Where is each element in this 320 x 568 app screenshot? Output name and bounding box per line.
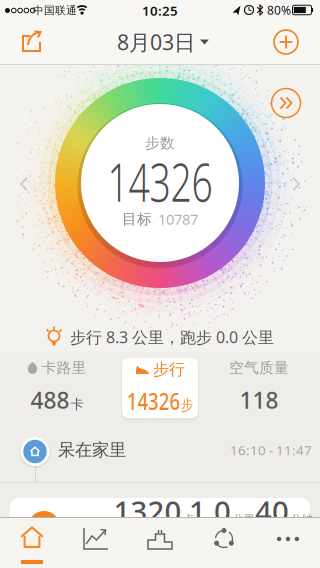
button[interactable]: 8月03日: [117, 28, 209, 56]
staticText: 呆在家里: [58, 439, 126, 461]
button[interactable]: 步行: [119, 357, 200, 419]
staticText: 分钟: [291, 512, 313, 525]
staticText: 16:10 - 11:47: [230, 441, 312, 459]
staticText: 14326: [119, 386, 184, 416]
button[interactable]: 呆在家里: [0, 420, 320, 480]
staticText: 步行 8.3 公里，跑步 0.0 公里: [70, 326, 274, 348]
staticText: 步: [185, 396, 200, 414]
staticText: 卡路里: [41, 359, 86, 377]
button[interactable]: [271, 27, 301, 57]
button[interactable]: [83, 527, 109, 551]
button[interactable]: [211, 527, 237, 551]
staticText: 公里: [233, 512, 255, 525]
button[interactable]: 1320: [10, 498, 310, 568]
staticText: 卡: [183, 512, 194, 525]
staticText: 118: [239, 385, 278, 415]
staticText: 10787: [158, 209, 198, 229]
staticText: 中国联通: [33, 4, 77, 17]
button[interactable]: [12, 169, 36, 199]
staticText: 80%: [267, 2, 291, 18]
staticText: 40: [255, 491, 289, 530]
staticText: 14326: [85, 146, 235, 216]
staticText: 1320: [113, 491, 181, 530]
button[interactable]: [271, 88, 301, 118]
staticText: 步数: [145, 134, 175, 152]
button[interactable]: [147, 528, 173, 550]
button[interactable]: [273, 529, 303, 549]
staticText: 8月03日: [117, 28, 195, 56]
staticText: 步行: [153, 360, 185, 379]
staticText: 1.0: [189, 491, 231, 530]
staticText: 卡: [70, 396, 83, 413]
button[interactable]: [16, 523, 48, 552]
staticText: 目标: [122, 210, 152, 228]
staticText: 488: [30, 385, 69, 415]
button[interactable]: [15, 27, 47, 59]
staticText: 10:25: [142, 2, 178, 19]
staticText: 空气质量: [229, 359, 289, 377]
button[interactable]: [284, 169, 308, 199]
